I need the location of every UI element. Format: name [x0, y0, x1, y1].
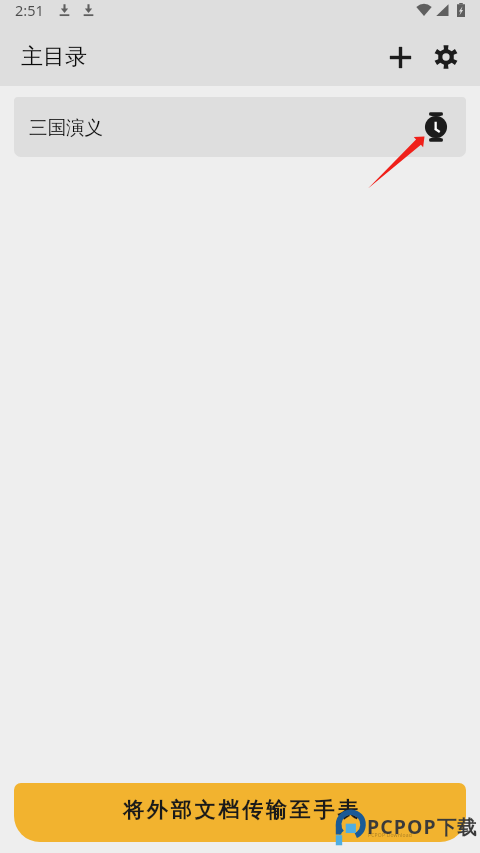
staticText: 三国演义	[29, 116, 103, 139]
staticText: PCPOP Download	[368, 832, 413, 839]
staticText: 2:51	[15, 0, 44, 20]
staticText: PCPOP下载	[367, 813, 478, 840]
button[interactable]: 三国演义	[14, 97, 466, 157]
staticText: 主目录	[21, 43, 87, 71]
button[interactable]: Send to watch	[419, 110, 453, 144]
button[interactable]: 将外部文档传输至手表	[14, 783, 466, 842]
staticText: 将外部文档传输至手表	[123, 797, 361, 823]
button[interactable]: Add	[377, 35, 423, 79]
button[interactable]: Settings	[423, 35, 469, 79]
